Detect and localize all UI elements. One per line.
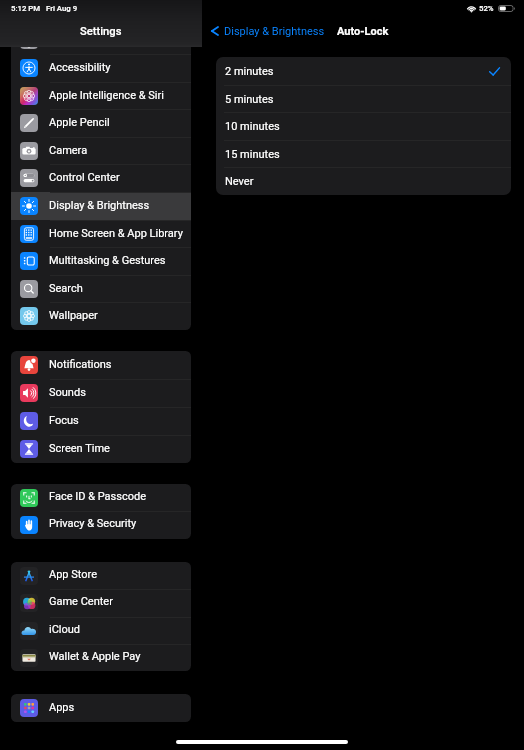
button[interactable]: Search bbox=[11, 275, 191, 303]
staticText: 5 minutes bbox=[225, 93, 274, 106]
button[interactable]: Home Screen & App Library bbox=[11, 220, 191, 248]
staticText: 2 minutes bbox=[225, 65, 274, 78]
staticText: Auto-Lock bbox=[337, 25, 389, 38]
staticText: Apple Intelligence & Siri bbox=[49, 89, 164, 102]
button[interactable]: Sounds bbox=[11, 379, 191, 407]
staticText: Notifications bbox=[49, 358, 112, 371]
staticText: Screen Time bbox=[49, 442, 110, 455]
staticText: Focus bbox=[49, 414, 79, 427]
button[interactable]: App Store bbox=[11, 562, 191, 589]
button[interactable]: Apple Intelligence & Siri bbox=[11, 82, 191, 110]
button[interactable]: Privacy & Security bbox=[11, 511, 191, 538]
button[interactable]: 5 minutes bbox=[216, 85, 511, 113]
button[interactable]: Apple Pencil bbox=[11, 109, 191, 137]
button[interactable]: Face ID & Passcode bbox=[11, 484, 191, 511]
staticText: Apple Pencil bbox=[49, 116, 110, 129]
staticText: Control Center bbox=[49, 171, 120, 184]
staticText: Wallpaper bbox=[49, 309, 98, 322]
button[interactable]: Wallpaper bbox=[11, 302, 191, 330]
staticText: Wallet & Apple Pay bbox=[49, 650, 141, 663]
button[interactable]: Back bbox=[210, 24, 325, 38]
button[interactable]: Game Center bbox=[11, 589, 191, 616]
staticText: 52% bbox=[479, 4, 494, 13]
button[interactable]: Control Center bbox=[11, 164, 191, 192]
staticText: iCloud bbox=[49, 623, 81, 636]
button[interactable]: Focus bbox=[11, 407, 191, 435]
button[interactable]: Accessibility bbox=[11, 54, 191, 82]
staticText: Fri Aug 9 bbox=[46, 4, 78, 13]
button[interactable]: iCloud bbox=[11, 617, 191, 644]
button[interactable]: 15 minutes bbox=[216, 140, 511, 168]
button[interactable]: Wallet & Apple Pay bbox=[11, 644, 191, 671]
staticText: Privacy & Security bbox=[49, 517, 137, 530]
button[interactable]: Display & Brightness bbox=[11, 192, 191, 220]
staticText: Apps bbox=[49, 701, 75, 714]
button[interactable]: Multitasking & Gestures bbox=[11, 247, 191, 275]
staticText: Multitasking & Gestures bbox=[49, 254, 166, 267]
staticText: Game Center bbox=[49, 595, 113, 608]
staticText: Display & Brightness bbox=[49, 199, 150, 212]
button[interactable]: Notifications bbox=[11, 351, 191, 379]
staticText: 15 minutes bbox=[225, 148, 280, 161]
button[interactable]: Screen Time bbox=[11, 435, 191, 463]
button[interactable]: 2 minutes bbox=[216, 57, 511, 85]
staticText: Display & Brightness bbox=[224, 25, 325, 38]
staticText: App Store bbox=[49, 568, 98, 581]
staticText: Camera bbox=[49, 144, 88, 157]
staticText: Never bbox=[225, 175, 254, 188]
other: Back bbox=[210, 24, 220, 38]
staticText: Accessibility bbox=[49, 61, 111, 74]
button[interactable]: Never bbox=[216, 167, 511, 195]
staticText: Settings bbox=[80, 25, 122, 38]
button[interactable]: Camera bbox=[11, 137, 191, 165]
staticText: 10 minutes bbox=[225, 120, 280, 133]
staticText: 5:12 PM bbox=[11, 4, 41, 13]
button[interactable]: 10 minutes bbox=[216, 112, 511, 140]
button[interactable]: General bbox=[11, 47, 191, 54]
button[interactable]: Apps bbox=[11, 694, 191, 722]
staticText: Search bbox=[49, 282, 83, 295]
staticText: Sounds bbox=[49, 386, 86, 399]
staticText: Face ID & Passcode bbox=[49, 490, 146, 503]
staticText: Home Screen & App Library bbox=[49, 227, 183, 240]
